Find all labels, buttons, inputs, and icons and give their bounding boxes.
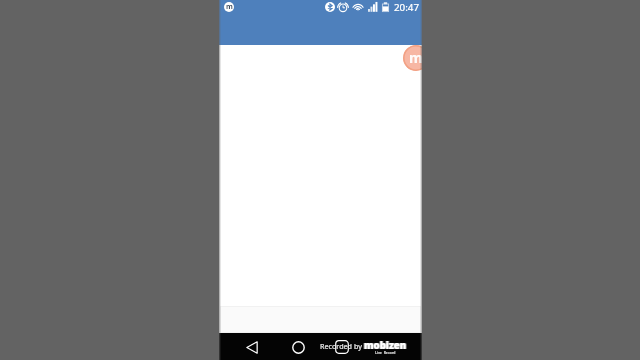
staticText: mobizen: [365, 339, 408, 352]
button[interactable]: Back: [243, 338, 261, 356]
staticText: Recorded by: [320, 341, 362, 351]
staticText: mobizen: [363, 339, 406, 352]
button[interactable]: Home: [289, 338, 307, 356]
staticText: 20:47: [394, 1, 420, 12]
staticText: m: [226, 2, 233, 12]
button[interactable]: Recent apps: [333, 338, 351, 356]
staticText: mobizen: [364, 339, 407, 352]
staticText: m: [409, 48, 422, 67]
staticText: Live Record: [375, 350, 396, 355]
button[interactable]: Mobizen recorder: [403, 45, 422, 71]
